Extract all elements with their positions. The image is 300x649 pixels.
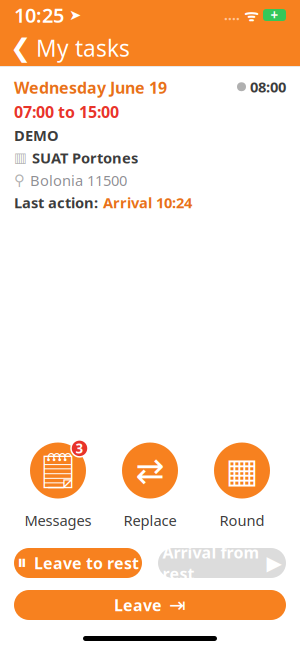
button[interactable]: ▦ (196, 439, 288, 530)
staticText: ➤ (64, 7, 81, 23)
button[interactable]: ⇄ (104, 439, 196, 530)
staticText: Leave (114, 594, 162, 616)
staticText: ❮ (10, 34, 31, 62)
staticText: ⏸ (17, 553, 27, 573)
staticText: Replace (123, 510, 176, 530)
staticText: .... (224, 6, 240, 24)
staticText: 🗒 (36, 451, 80, 490)
staticText: SUAT Portones (32, 148, 138, 167)
staticText: 10:25 (14, 2, 64, 28)
staticText: 07:00 to 15:00 (14, 101, 119, 122)
staticText: Bolonia 11500 (30, 170, 127, 190)
button[interactable]: ❮ (0, 27, 140, 69)
staticText: My tasks (36, 33, 130, 63)
staticText: ▶ (266, 552, 281, 574)
button[interactable]: ⏸ (14, 548, 142, 578)
staticText: 08:00 (250, 77, 286, 96)
button[interactable]: Arrival from rest (158, 548, 286, 578)
staticText: ▦ (225, 451, 258, 490)
button[interactable]: 🗒 (12, 439, 104, 530)
staticText: Arrival 10:24 (103, 193, 192, 212)
staticText: + (270, 6, 278, 24)
staticText: ⇥ (169, 594, 186, 616)
staticText: Wednesday June 19 (14, 77, 167, 98)
staticText: ⇄ (135, 451, 164, 490)
staticText: Round (219, 510, 264, 530)
staticText: Last action: (14, 193, 98, 212)
staticText: ▥ (14, 150, 27, 165)
staticText: Messages (24, 510, 91, 530)
staticText: 3 (75, 439, 83, 457)
staticText: Leave to rest (34, 552, 139, 574)
staticText: DEMO (14, 125, 59, 145)
staticText: ⚲ (14, 172, 25, 188)
staticText: Arrival from rest (162, 542, 259, 584)
button[interactable]: Leave (14, 590, 286, 620)
staticText: ᯤ (240, 4, 263, 26)
